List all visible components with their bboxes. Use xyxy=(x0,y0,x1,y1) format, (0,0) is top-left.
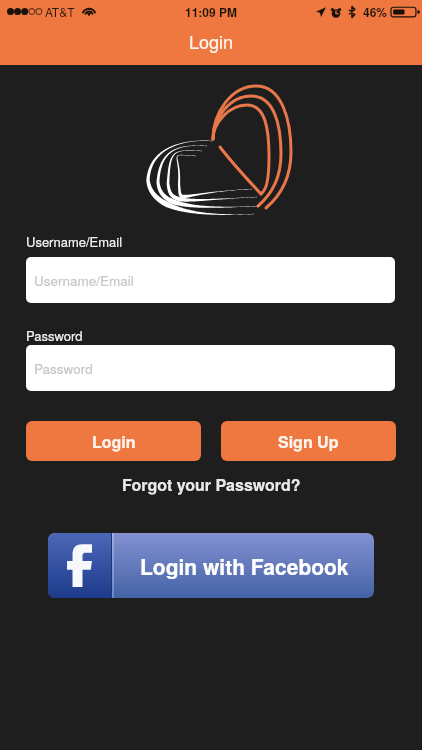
staticText: Username/Email xyxy=(34,271,134,290)
button[interactable]: Password xyxy=(26,345,395,391)
staticText: Login with Facebook xyxy=(140,551,349,581)
staticText: Password xyxy=(34,359,93,378)
staticText: Username/Email xyxy=(26,232,123,251)
staticText: Forgot your Password? xyxy=(122,473,301,496)
button[interactable]: Username/Email xyxy=(26,257,395,303)
staticText: AT&T xyxy=(45,3,75,20)
button[interactable]: Sign Up xyxy=(221,421,396,461)
staticText: 46% xyxy=(363,3,388,20)
staticText: Login xyxy=(189,28,234,54)
staticText: Sign Up xyxy=(278,430,339,453)
button[interactable]: Login xyxy=(26,421,201,461)
button[interactable]: Forgot your Password? xyxy=(100,470,322,498)
staticText: Login xyxy=(92,430,136,453)
button[interactable]: Login with Facebook xyxy=(48,533,374,598)
staticText: 11:09 PM xyxy=(185,3,238,20)
staticText: Password xyxy=(26,326,83,345)
